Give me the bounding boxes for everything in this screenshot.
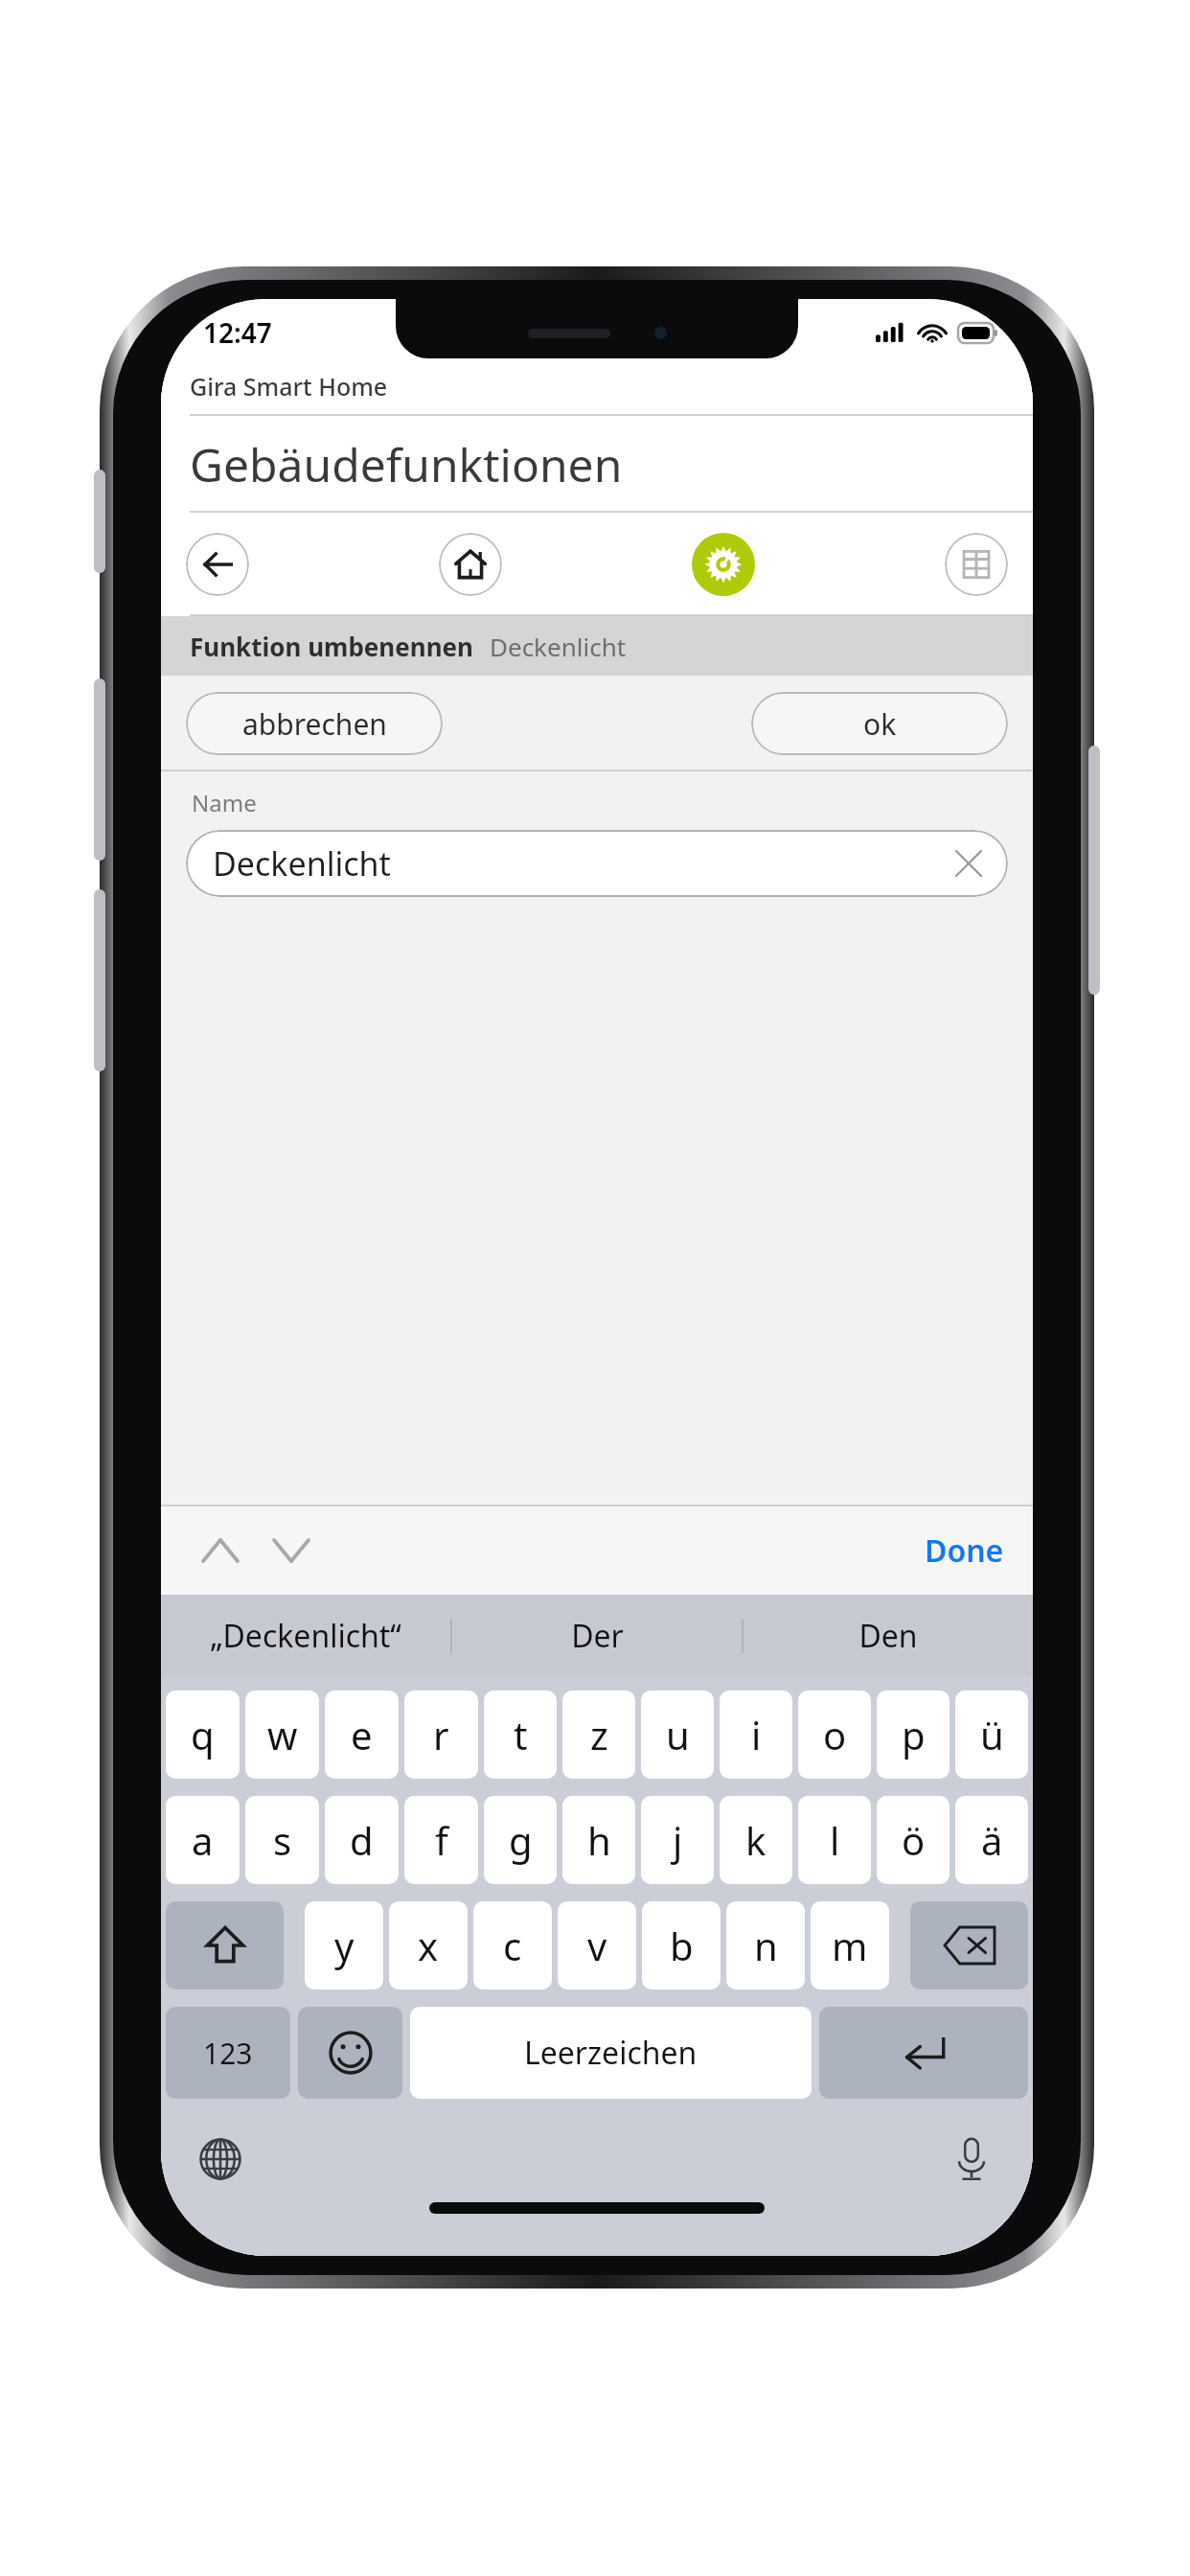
button[interactable]: g <box>484 1796 557 1884</box>
button[interactable]: q <box>166 1690 240 1779</box>
button[interactable]: Next field <box>264 1524 318 1577</box>
button[interactable]: u <box>641 1690 714 1779</box>
staticText: ä <box>981 1814 1003 1866</box>
button[interactable]: Clear text <box>952 847 985 880</box>
staticText: Gebäudefunktionen <box>190 433 623 495</box>
button[interactable]: j <box>641 1796 714 1884</box>
button[interactable]: „Deckenlicht“ <box>161 1595 450 1677</box>
button[interactable]: b <box>642 1901 721 1989</box>
button[interactable]: Previous field <box>194 1524 247 1577</box>
staticText: Name <box>192 787 257 818</box>
button[interactable]: ok <box>751 692 1008 755</box>
button[interactable]: p <box>877 1690 950 1779</box>
staticText: u <box>666 1709 690 1760</box>
button[interactable]: Den <box>744 1595 1033 1677</box>
staticText: y <box>334 1920 355 1971</box>
button[interactable]: n <box>726 1901 805 1989</box>
staticText: v <box>587 1920 607 1971</box>
button[interactable]: d <box>325 1796 399 1884</box>
button[interactable]: t <box>484 1690 557 1779</box>
staticText: „Deckenlicht“ <box>210 1615 401 1657</box>
staticText: n <box>754 1920 778 1971</box>
button[interactable]: c <box>473 1901 552 1989</box>
button[interactable]: Leerzeichen <box>410 2007 812 2099</box>
staticText: q <box>191 1709 215 1760</box>
button[interactable]: Backspace <box>910 1901 1028 1989</box>
button[interactable]: s <box>245 1796 319 1884</box>
button[interactable]: Deckenlicht <box>186 830 1008 897</box>
button[interactable]: Return <box>819 2007 1028 2099</box>
staticText: a <box>192 1814 214 1866</box>
button[interactable]: Change keyboard language <box>194 2132 247 2186</box>
button[interactable]: y <box>305 1901 383 1989</box>
button[interactable]: ä <box>955 1796 1028 1884</box>
button[interactable]: Dictation <box>945 2132 998 2186</box>
staticText: 123 <box>203 2034 253 2073</box>
staticText: ö <box>902 1814 926 1866</box>
staticText: m <box>832 1920 868 1971</box>
staticText: h <box>587 1814 611 1866</box>
staticText: Der <box>571 1615 624 1657</box>
staticText: k <box>745 1814 767 1866</box>
staticText: x <box>418 1920 439 1971</box>
button[interactable]: x <box>389 1901 468 1989</box>
button[interactable]: w <box>245 1690 319 1779</box>
button[interactable]: a <box>166 1796 240 1884</box>
button[interactable]: i <box>720 1690 792 1779</box>
staticText: s <box>273 1814 292 1866</box>
staticText: 12:47 <box>203 314 272 351</box>
button[interactable]: Done <box>925 1529 1004 1572</box>
staticText: Den <box>858 1615 918 1657</box>
staticText: r <box>433 1709 449 1760</box>
button[interactable]: h <box>562 1796 635 1884</box>
button[interactable]: v <box>558 1901 636 1989</box>
staticText: z <box>590 1709 608 1760</box>
staticText: l <box>830 1814 840 1866</box>
staticText: w <box>267 1709 298 1760</box>
button[interactable]: Shift <box>166 1901 284 1989</box>
staticText: p <box>902 1709 926 1760</box>
staticText: Deckenlicht <box>490 630 627 663</box>
staticText: Leerzeichen <box>524 2032 698 2074</box>
button[interactable]: Back <box>186 533 249 596</box>
staticText: Gira Smart Home <box>190 370 388 402</box>
button[interactable]: Home <box>439 533 502 596</box>
staticText: f <box>435 1814 448 1866</box>
staticText: j <box>673 1814 683 1866</box>
staticText: i <box>751 1709 762 1760</box>
staticText: d <box>350 1814 374 1866</box>
button[interactable]: l <box>798 1796 871 1884</box>
button[interactable]: o <box>798 1690 871 1779</box>
button[interactable]: m <box>811 1901 889 1989</box>
button[interactable]: Grid view <box>945 533 1008 596</box>
staticText: abbrechen <box>242 704 387 744</box>
button[interactable]: k <box>720 1796 792 1884</box>
button[interactable]: abbrechen <box>186 692 443 755</box>
staticText: g <box>509 1814 533 1866</box>
staticText: Done <box>925 1529 1004 1572</box>
button[interactable]: ü <box>955 1690 1028 1779</box>
button[interactable]: z <box>562 1690 635 1779</box>
staticText: t <box>514 1709 528 1760</box>
button[interactable]: e <box>325 1690 399 1779</box>
button[interactable]: Emoji <box>298 2007 402 2099</box>
button[interactable]: ö <box>877 1796 950 1884</box>
staticText: e <box>351 1709 373 1760</box>
button[interactable]: 123 <box>166 2007 290 2099</box>
staticText: ü <box>980 1709 1004 1760</box>
staticText: b <box>670 1920 694 1971</box>
staticText: o <box>823 1709 847 1760</box>
staticText: ok <box>863 704 897 744</box>
button[interactable]: f <box>404 1796 478 1884</box>
button[interactable]: Settings <box>692 533 755 596</box>
staticText: Funktion umbenennen <box>190 630 474 663</box>
button[interactable]: Der <box>452 1595 742 1677</box>
staticText: c <box>503 1920 522 1971</box>
staticText: Deckenlicht <box>213 841 952 885</box>
button[interactable]: r <box>404 1690 478 1779</box>
